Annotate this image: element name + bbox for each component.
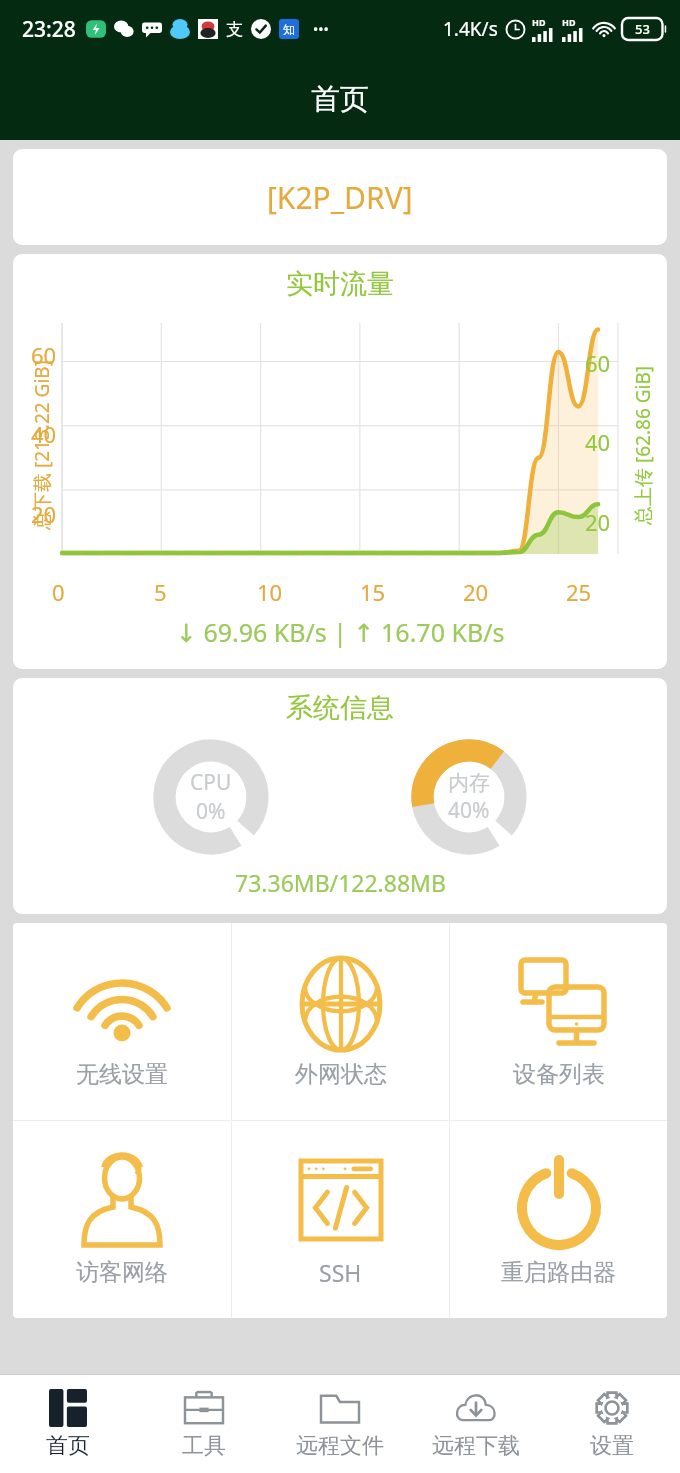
staticText: 0 — [52, 577, 65, 607]
staticText: [K2P_DRV] — [267, 177, 413, 218]
button[interactable]: SSH — [232, 1121, 449, 1318]
button[interactable]: Home — [0, 1375, 136, 1473]
staticText: 实时流量 — [286, 267, 394, 301]
staticText: 知 — [283, 22, 295, 37]
button[interactable]: 实时流量 — [13, 254, 667, 669]
button[interactable]: 外网状态 — [232, 923, 449, 1120]
staticText: 设备列表 — [513, 1060, 605, 1089]
button[interactable]: 设备列表 — [450, 923, 667, 1120]
other: Home — [49, 1389, 87, 1427]
staticText: 20 — [31, 499, 57, 529]
staticText: 总上传 [62.86 GiB] — [630, 365, 656, 525]
staticText: CPU — [190, 768, 232, 797]
staticText: 首页 — [46, 1432, 90, 1460]
staticText: 40% — [448, 796, 490, 825]
staticText: 1.4K/s — [443, 16, 498, 42]
button[interactable]: Tools — [136, 1375, 272, 1473]
staticText: SSH — [319, 1257, 362, 1288]
button[interactable]: [K2P_DRV] — [13, 149, 667, 245]
staticText: 20 — [585, 507, 611, 537]
staticText: 40 — [585, 427, 611, 457]
staticText: 15 — [360, 577, 386, 607]
staticText: 5 — [154, 577, 167, 607]
staticText: 20 — [463, 577, 489, 607]
staticText: 60 — [31, 340, 57, 370]
staticText: 25 — [566, 577, 592, 607]
staticText: 重启路由器 — [501, 1258, 616, 1287]
other: Remote downloads — [457, 1389, 495, 1427]
staticText: 支 — [226, 19, 243, 40]
button[interactable]: Remote downloads — [408, 1375, 544, 1473]
button[interactable]: 重启路由器 — [450, 1121, 667, 1318]
staticText: 远程下载 — [432, 1432, 520, 1460]
staticText: 23:28 — [22, 15, 76, 44]
staticText: 总下载 [213.22 GiB] — [29, 360, 55, 530]
staticText: 40 — [31, 419, 57, 449]
staticText: 工具 — [182, 1432, 226, 1460]
button[interactable]: 访客网络 — [13, 1121, 231, 1318]
button[interactable]: Settings — [544, 1375, 680, 1473]
staticText: 无线设置 — [76, 1060, 168, 1089]
staticText: ••• — [313, 20, 329, 39]
staticText: 0% — [196, 797, 226, 826]
staticText: HD — [532, 16, 546, 28]
staticText: 外网状态 — [295, 1060, 387, 1089]
staticText: 10 — [257, 577, 283, 607]
staticText: 设置 — [590, 1432, 634, 1460]
staticText: 首页 — [311, 81, 369, 118]
staticText: 远程文件 — [296, 1432, 384, 1460]
staticText: HD — [562, 16, 576, 28]
staticText: 内存 — [448, 770, 490, 796]
staticText: 系统信息 — [286, 691, 394, 725]
other: Settings — [593, 1389, 631, 1427]
staticText: 53 — [635, 20, 650, 38]
staticText: 60 — [585, 348, 611, 378]
button[interactable]: Remote files — [272, 1375, 408, 1473]
button[interactable]: 系统信息 — [13, 678, 667, 914]
other: Remote files — [321, 1389, 359, 1427]
staticText: 73.36MB/122.88MB — [235, 867, 446, 898]
staticText: 访客网络 — [76, 1258, 168, 1287]
other: Tools — [185, 1389, 223, 1427]
staticText: ↓ 69.96 KB/s | ↑ 16.70 KB/s — [176, 615, 505, 649]
button[interactable]: 无线设置 — [13, 923, 231, 1120]
